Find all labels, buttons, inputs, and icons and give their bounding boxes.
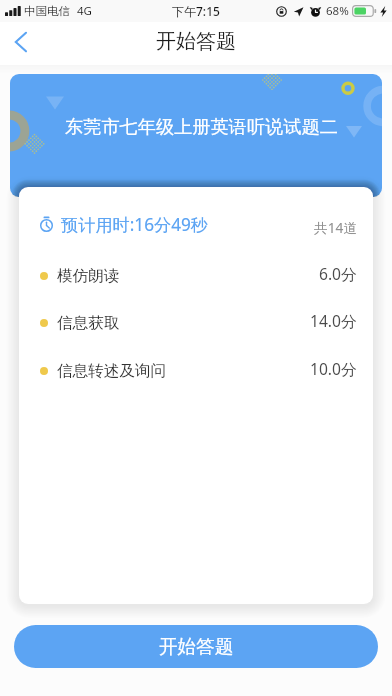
staticText: 开始答题 (156, 29, 236, 54)
button[interactable]: 信息转述及询问 (19, 354, 373, 388)
staticText: 东莞市七年级上册英语听说试题二 (65, 115, 338, 138)
staticText: 14.0分 (310, 310, 357, 331)
staticText: 共14道 (314, 218, 358, 237)
staticText: 信息获取 (57, 313, 120, 333)
button[interactable]: Back (0, 21, 42, 63)
staticText: 4G (77, 3, 92, 19)
button[interactable]: 开始答题 (14, 625, 378, 668)
staticText: 68% (326, 3, 349, 19)
staticText: 10.0分 (310, 358, 357, 379)
staticText: 开始答题 (159, 635, 234, 658)
button[interactable]: 信息获取 (19, 306, 373, 340)
staticText: 下午7:15 (172, 3, 220, 19)
button[interactable]: 模仿朗读 (19, 259, 373, 293)
staticText: 信息转述及询问 (57, 361, 167, 381)
staticText: 6.0分 (319, 263, 357, 284)
staticText: 中国电信 (24, 4, 70, 18)
staticText: 模仿朗读 (57, 266, 120, 286)
staticText: 预计用时:16分49秒 (61, 213, 209, 236)
